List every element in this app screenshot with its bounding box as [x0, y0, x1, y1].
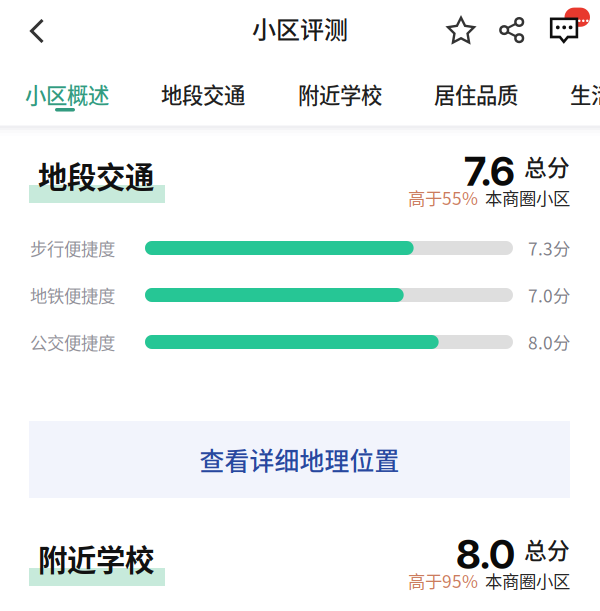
button[interactable]: 地段交通 — [161, 81, 245, 107]
staticText: 公交便捷度 — [30, 329, 115, 355]
staticText: 附近学校 — [298, 79, 382, 109]
button[interactable]: 生活配套 — [570, 81, 600, 107]
button[interactable]: Share — [493, 10, 533, 50]
button[interactable]: 附近学校 — [298, 81, 382, 107]
staticText: 7.3分 — [528, 235, 570, 261]
staticText: 本商圈小区 — [485, 568, 570, 593]
staticText: 总分 — [524, 150, 570, 183]
staticText: 地段交通 — [38, 154, 154, 196]
staticText: 附近学校 — [38, 537, 154, 579]
staticText: 生活配套 — [570, 79, 600, 109]
button[interactable]: 居住品质 — [434, 81, 518, 107]
staticText: 7.6 — [464, 147, 515, 195]
staticText: 高于55% — [408, 185, 478, 210]
staticText: 居住品质 — [434, 79, 518, 109]
button[interactable]: Favorite — [446, 16, 476, 46]
staticText: 高于95% — [408, 568, 478, 593]
staticText: 地铁便捷度 — [30, 282, 115, 308]
button[interactable]: Messages — [543, 2, 591, 48]
button[interactable]: 小区概述 — [25, 81, 109, 107]
button[interactable]: Back — [28, 18, 45, 44]
staticText: 步行便捷度 — [30, 235, 115, 261]
button[interactable]: 查看详细地理位置 — [29, 421, 570, 498]
staticText: 8.0 — [456, 530, 515, 578]
staticText: 小区概述 — [25, 79, 109, 109]
staticText: 本商圈小区 — [485, 185, 570, 210]
staticText: 查看详细地理位置 — [199, 441, 399, 477]
staticText: 小区评测 — [252, 11, 348, 45]
staticText: 地段交通 — [161, 79, 245, 109]
staticText: 8.0分 — [528, 329, 570, 355]
staticText: 7.0分 — [528, 282, 570, 308]
staticText: 总分 — [524, 533, 570, 566]
